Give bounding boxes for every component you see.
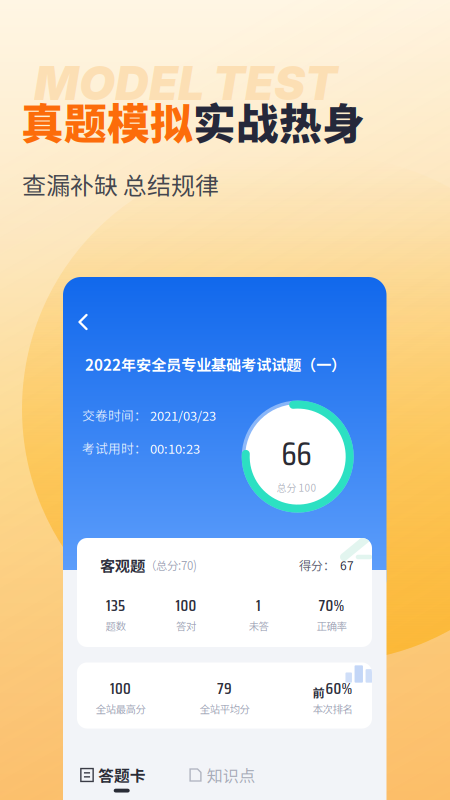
staticText: 1 <box>256 593 261 618</box>
staticText: 得分： <box>299 556 335 574</box>
staticText: 本次排名 <box>313 701 353 716</box>
staticText: 60% <box>326 676 353 701</box>
staticText: 查漏补缺 总结规律 <box>22 167 219 201</box>
staticText: 66 <box>281 429 311 479</box>
staticText: 答题卡 <box>98 764 146 786</box>
staticText: 前 <box>313 684 325 701</box>
staticText: 考试用时： <box>82 439 147 457</box>
staticText: 题数 <box>105 618 125 633</box>
staticText: 00:10:23 <box>150 439 200 457</box>
staticText: 70% <box>318 593 344 618</box>
staticText: 100 <box>175 593 196 618</box>
staticText: 客观题 <box>100 554 145 576</box>
staticText: 全站平均分 <box>199 701 249 716</box>
staticText: 79 <box>217 676 232 701</box>
staticText: 2022年安全员专业基础考试试题（一） <box>85 353 346 375</box>
button[interactable]: Back <box>72 310 100 334</box>
staticText: 交卷时间： <box>82 406 147 424</box>
staticText: 知识点 <box>207 763 255 787</box>
button[interactable]: 答题卡 <box>80 764 146 786</box>
staticText: 真题模拟 <box>21 90 193 152</box>
button[interactable]: 知识点 <box>189 763 255 787</box>
staticText: 2021/03/23 <box>150 406 216 424</box>
staticText: 67 <box>340 556 354 574</box>
staticText: 答对 <box>176 618 196 633</box>
staticText: 正确率 <box>316 618 346 633</box>
staticText: （总分:70) <box>145 557 197 573</box>
staticText: 未答 <box>248 618 268 633</box>
staticText: 全站最高分 <box>96 701 146 716</box>
staticText: 135 <box>106 593 125 618</box>
staticText: 100 <box>110 676 131 701</box>
staticText: MODEL TEST <box>34 55 337 111</box>
staticText: 实战热身 <box>193 90 365 152</box>
staticText: 总分 100 <box>276 480 316 495</box>
